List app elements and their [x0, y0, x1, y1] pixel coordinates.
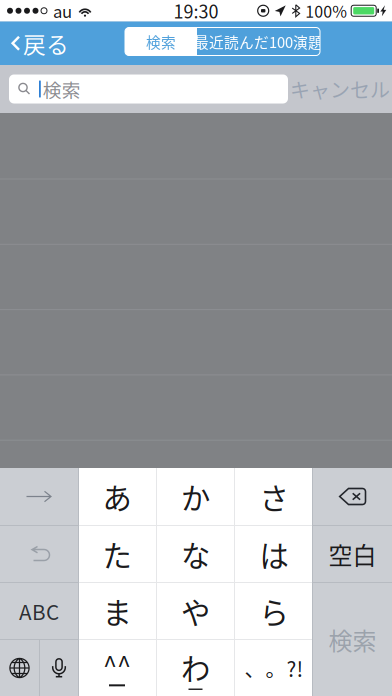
staticText: 100%: [305, 0, 347, 22]
button[interactable]: 最近読んだ100演題: [197, 27, 320, 55]
button[interactable]: 次候補: [0, 468, 78, 525]
button[interactable]: 取り消し: [0, 526, 78, 582]
button[interactable]: は: [235, 526, 313, 582]
staticText: は: [259, 533, 288, 575]
staticText: あ: [102, 475, 131, 518]
staticText: 検索: [43, 75, 81, 102]
button[interactable]: か: [157, 468, 234, 525]
staticText: キャンセル: [290, 74, 390, 103]
button[interactable]: 音声入力: [40, 640, 78, 696]
button[interactable]: ま: [78, 583, 156, 639]
button[interactable]: あ: [78, 468, 156, 525]
staticText: au: [53, 0, 72, 23]
button[interactable]: キーボード切り替え: [0, 640, 39, 696]
button[interactable]: ABC: [0, 583, 78, 639]
button[interactable]: わ: [157, 640, 234, 696]
button[interactable]: ら: [235, 583, 313, 639]
button[interactable]: さ: [235, 468, 313, 525]
staticText: 検索: [328, 622, 376, 657]
staticText: さ: [259, 475, 288, 518]
staticText: 検索: [146, 31, 176, 52]
button[interactable]: 削除: [313, 468, 392, 525]
staticText: 戻る: [23, 27, 69, 60]
staticText: な: [181, 533, 210, 575]
button[interactable]: 、。?!: [235, 640, 313, 696]
button[interactable]: 顔文字: [78, 640, 156, 696]
button[interactable]: な: [157, 526, 234, 582]
staticText: ま: [102, 590, 131, 632]
staticText: 最近読んだ100演題: [194, 31, 323, 52]
staticText: ABC: [19, 596, 59, 626]
button[interactable]: や: [157, 583, 234, 639]
button[interactable]: 空白: [313, 526, 392, 582]
staticText: 空白: [328, 537, 376, 571]
button[interactable]: 検索: [125, 27, 197, 55]
button[interactable]: キャンセル: [288, 65, 392, 113]
staticText: わ: [181, 646, 210, 689]
staticText: 、。?!: [244, 653, 303, 683]
button[interactable]: 検索: [313, 583, 392, 696]
staticText: 19:30: [173, 0, 218, 24]
staticText: ら: [259, 590, 288, 632]
staticText: ^^: [103, 646, 131, 682]
staticText: た: [102, 533, 131, 575]
staticText: か: [181, 475, 210, 518]
button[interactable]: た: [78, 526, 156, 582]
staticText: や: [181, 590, 210, 632]
button[interactable]: 戻る: [0, 21, 110, 65]
